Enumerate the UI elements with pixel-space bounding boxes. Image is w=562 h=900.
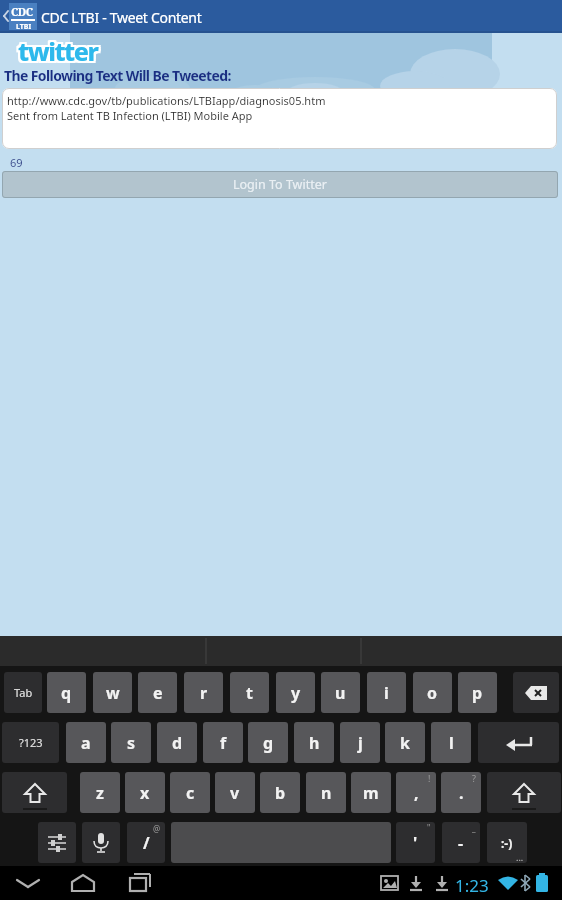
staticText: @: [153, 823, 161, 834]
staticText: twitter: [18, 32, 98, 66]
staticText: twitter: [16, 34, 96, 68]
staticText: Login To Twitter: [233, 176, 327, 193]
button[interactable]: p: [458, 672, 497, 713]
staticText: twitter: [18, 36, 98, 70]
staticText: f: [220, 732, 227, 754]
button[interactable]: a: [66, 722, 106, 763]
staticText: x: [140, 782, 150, 804]
staticText: n: [321, 782, 332, 804]
staticText: m: [363, 782, 379, 804]
button[interactable]: t: [230, 672, 269, 713]
button[interactable]: x: [125, 772, 165, 813]
staticText: v: [230, 782, 240, 804]
staticText: !: [428, 772, 431, 784]
staticText: /: [143, 832, 150, 854]
staticText: a: [81, 732, 91, 754]
button[interactable]: q: [47, 672, 86, 713]
button[interactable]: f: [203, 722, 243, 763]
staticText: t: [246, 682, 253, 704]
staticText: -: [458, 832, 464, 854]
staticText: b: [275, 782, 286, 804]
button[interactable]: u: [321, 672, 360, 713]
button[interactable]: v: [215, 772, 255, 813]
button[interactable]: r: [184, 672, 223, 713]
staticText: h: [309, 732, 320, 754]
button[interactable]: [10, 866, 46, 900]
button[interactable]: CDC: [0, 0, 562, 33]
button[interactable]: [408, 866, 426, 900]
button[interactable]: z: [80, 772, 120, 813]
button[interactable]: g: [248, 722, 288, 763]
staticText: twitter: [20, 36, 100, 70]
button[interactable]: [434, 866, 452, 900]
button[interactable]: [122, 866, 158, 900]
staticText: c: [186, 782, 195, 804]
staticText: twitter: [20, 32, 100, 66]
button[interactable]: m: [351, 772, 391, 813]
button[interactable]: k: [385, 722, 425, 763]
button[interactable]: b: [260, 772, 300, 813]
staticText: LTBI: [16, 22, 32, 32]
staticText: o: [427, 682, 438, 704]
button[interactable]: [65, 866, 101, 900]
staticText: ': [413, 832, 418, 854]
staticText: ,: [414, 782, 419, 804]
staticText: Tab: [14, 685, 33, 700]
staticText: q: [61, 682, 72, 704]
staticText: z: [96, 782, 104, 804]
staticText: ?: [472, 772, 476, 784]
button[interactable]: ': [396, 822, 435, 863]
button[interactable]: http://www.cdc.gov/tb/publications/LTBIa…: [2, 88, 557, 149]
staticText: i: [384, 682, 389, 704]
staticText: The Following Text Will Be Tweeted:: [4, 66, 231, 85]
button[interactable]: c: [170, 772, 210, 813]
staticText: CDC: [11, 4, 33, 19]
button[interactable]: [38, 822, 76, 863]
button[interactable]: o: [413, 672, 452, 713]
button[interactable]: ?123: [2, 722, 59, 763]
button[interactable]: [82, 822, 120, 863]
button[interactable]: Tab: [4, 672, 42, 713]
button[interactable]: h: [294, 722, 334, 763]
staticText: 69: [10, 155, 23, 170]
button[interactable]: s: [111, 722, 151, 763]
staticText: twitter: [16, 32, 96, 66]
staticText: w: [106, 682, 120, 704]
button[interactable]: [487, 772, 561, 813]
staticText: j: [358, 732, 363, 754]
staticText: d: [172, 732, 183, 754]
staticText: CDC LTBI - Tweet Content: [41, 8, 202, 27]
button[interactable]: e: [138, 672, 177, 713]
button[interactable]: y: [276, 672, 315, 713]
staticText: http://www.cdc.gov/tb/publications/LTBIa…: [7, 93, 326, 108]
button[interactable]: w: [93, 672, 132, 713]
button[interactable]: [513, 672, 559, 713]
button[interactable]: .: [441, 772, 481, 813]
staticText: k: [400, 732, 410, 754]
button[interactable]: i: [367, 672, 406, 713]
button[interactable]: d: [157, 722, 197, 763]
staticText: ": [427, 822, 431, 833]
button[interactable]: [478, 722, 559, 763]
staticText: u: [335, 682, 346, 704]
staticText: y: [291, 682, 301, 704]
staticText: twitter: [16, 36, 96, 70]
staticText: twitter: [20, 34, 100, 68]
staticText: _: [472, 822, 476, 833]
staticText: e: [153, 682, 163, 704]
button[interactable]: [2, 772, 67, 813]
button[interactable]: j: [340, 722, 380, 763]
button[interactable]: l: [431, 722, 471, 763]
staticText: l: [449, 732, 454, 754]
button[interactable]: /: [127, 822, 165, 863]
staticText: Sent from Latent TB Infection (LTBI) Mob…: [7, 108, 253, 123]
button[interactable]: ,: [396, 772, 436, 813]
button[interactable]: :-): [487, 822, 527, 863]
staticText: 1:23: [455, 874, 489, 897]
staticText: ...: [516, 851, 524, 863]
button[interactable]: [380, 866, 400, 900]
button[interactable]: n: [306, 772, 346, 813]
button[interactable]: Login To Twitter: [2, 171, 558, 198]
button[interactable]: -: [442, 822, 480, 863]
